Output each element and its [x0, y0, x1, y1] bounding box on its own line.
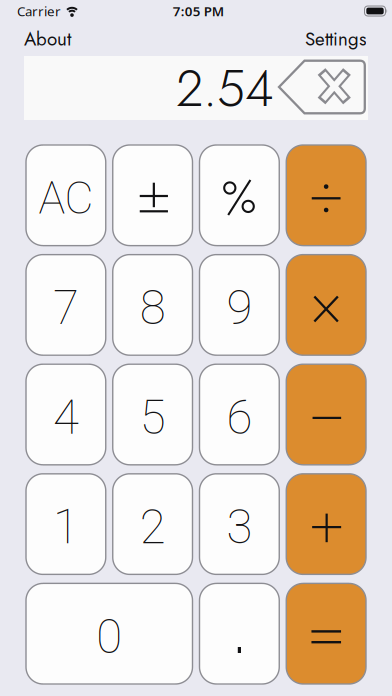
staticText: 8: [140, 280, 166, 336]
button[interactable]: 2: [113, 474, 193, 574]
button[interactable]: 8: [113, 255, 193, 355]
button[interactable]: [286, 364, 366, 465]
button[interactable]: [199, 145, 279, 246]
staticText: 5: [140, 390, 166, 445]
staticText: 0: [96, 609, 122, 664]
staticText: Carrier: [17, 2, 61, 20]
button[interactable]: About: [24, 25, 71, 52]
button[interactable]: 1: [26, 474, 106, 574]
button[interactable]: [278, 60, 366, 115]
button[interactable]: 9: [199, 255, 279, 355]
staticText: 2.54: [176, 52, 274, 125]
button[interactable]: 3: [199, 474, 279, 574]
staticText: 2: [140, 499, 166, 555]
button[interactable]: [113, 145, 193, 246]
button[interactable]: AC: [26, 145, 106, 246]
staticText: AC: [38, 172, 93, 224]
staticText: 9: [226, 280, 252, 336]
staticText: 3: [226, 499, 252, 555]
staticText: 4: [53, 390, 79, 445]
button[interactable]: [199, 583, 279, 684]
button[interactable]: 6: [199, 364, 279, 465]
button[interactable]: [286, 255, 366, 355]
button[interactable]: 7: [26, 255, 106, 355]
staticText: About: [24, 25, 71, 52]
button[interactable]: Settings: [305, 25, 367, 52]
staticText: 1: [53, 499, 79, 555]
staticText: 7: [53, 280, 79, 336]
staticText: Settings: [305, 25, 367, 52]
staticText: 7:05 PM: [173, 2, 224, 20]
button[interactable]: 4: [26, 364, 106, 465]
button[interactable]: [286, 145, 366, 246]
button[interactable]: 5: [113, 364, 193, 465]
staticText: 6: [226, 390, 252, 445]
button[interactable]: [286, 583, 366, 684]
button[interactable]: [286, 474, 366, 574]
button[interactable]: 0: [26, 583, 192, 684]
